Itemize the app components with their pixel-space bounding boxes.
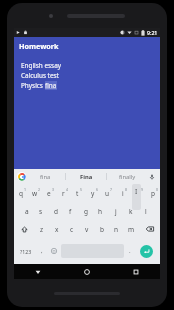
button[interactable]: j <box>108 202 123 220</box>
button[interactable]: l <box>138 202 153 220</box>
button[interactable]: d <box>48 202 63 220</box>
staticText: 7 <box>110 187 113 192</box>
button[interactable]: ?123 <box>16 240 36 262</box>
button[interactable]: . <box>124 240 135 262</box>
button[interactable]: p <box>145 184 160 202</box>
staticText: m <box>128 225 135 234</box>
button[interactable]: fina <box>26 173 65 181</box>
button[interactable]: Shift <box>14 220 34 238</box>
button[interactable]: r <box>56 184 70 202</box>
staticText: w <box>32 189 38 198</box>
staticText: c <box>70 225 74 234</box>
staticText: ?123 <box>20 248 32 255</box>
staticText: z <box>40 225 44 234</box>
button[interactable]: Back <box>14 264 62 279</box>
staticText: g <box>84 207 88 216</box>
button[interactable]: u <box>100 184 115 202</box>
button[interactable]: Emoji <box>47 240 61 262</box>
staticText: u <box>105 189 110 198</box>
staticText: 3 <box>52 187 55 192</box>
staticText: Homework <box>19 41 59 51</box>
button[interactable]: x <box>49 220 64 238</box>
staticText: 1 <box>24 187 27 192</box>
button[interactable]: o <box>130 184 145 202</box>
staticText: Fina <box>80 173 93 181</box>
button[interactable]: Fina <box>66 173 106 181</box>
staticText: , <box>41 247 43 255</box>
staticText: Physics <box>21 81 45 90</box>
staticText: r <box>62 189 65 198</box>
staticText: fina <box>45 81 57 90</box>
staticText: . <box>129 247 131 255</box>
button[interactable]: , <box>36 240 47 262</box>
staticText: 2 <box>38 187 41 192</box>
staticText: n <box>114 225 119 234</box>
button[interactable]: Backspace <box>139 220 160 238</box>
staticText: f <box>69 207 72 216</box>
staticText: y <box>91 189 95 198</box>
button[interactable]: a <box>20 202 34 220</box>
button[interactable]: n <box>109 220 124 238</box>
staticText: x <box>55 225 59 234</box>
staticText: 5 <box>80 187 83 192</box>
staticText: v <box>85 225 89 234</box>
staticText: 4 <box>66 187 69 192</box>
button[interactable]: finally <box>107 173 147 181</box>
button[interactable]: i <box>115 184 130 202</box>
staticText: 9 <box>141 187 144 192</box>
staticText: finally <box>119 173 136 181</box>
staticText: English essay <box>21 61 61 70</box>
button[interactable]: Recents <box>111 264 160 279</box>
staticText: i <box>122 189 124 198</box>
button[interactable]: Voice input <box>147 169 157 184</box>
staticText: h <box>98 207 103 216</box>
staticText: 8 <box>125 187 128 192</box>
button[interactable]: k <box>123 202 138 220</box>
button[interactable]: t <box>70 184 85 202</box>
button[interactable]: Enter <box>140 245 153 258</box>
button[interactable]: m <box>124 220 139 238</box>
staticText: I <box>135 187 138 196</box>
staticText: k <box>129 207 133 216</box>
button[interactable]: q <box>14 184 28 202</box>
staticText: l <box>145 207 147 216</box>
staticText: a <box>25 207 29 216</box>
staticText: d <box>54 207 58 216</box>
button[interactable]: v <box>79 220 94 238</box>
staticText: 0 <box>156 187 159 192</box>
staticText: fina <box>40 173 51 181</box>
button[interactable]: Google <box>17 172 26 181</box>
staticText: t <box>76 189 79 198</box>
button[interactable]: c <box>64 220 79 238</box>
staticText: o <box>136 189 140 198</box>
staticText: j <box>115 207 117 216</box>
button[interactable]: s <box>34 202 48 220</box>
button[interactable]: Home <box>62 264 111 279</box>
button[interactable]: y <box>85 184 100 202</box>
staticText: b <box>100 225 104 234</box>
button[interactable]: b <box>94 220 109 238</box>
staticText: Calculus test <box>21 71 59 80</box>
button[interactable]: English essay <box>14 55 160 169</box>
button[interactable]: g <box>78 202 93 220</box>
staticText: e <box>47 189 51 198</box>
staticText: s <box>39 207 43 216</box>
button[interactable]: Homework <box>14 37 160 55</box>
button[interactable]: w <box>28 184 42 202</box>
button[interactable]: h <box>93 202 108 220</box>
staticText: q <box>19 189 23 198</box>
button[interactable]: z <box>34 220 49 238</box>
button[interactable]: e <box>42 184 56 202</box>
button[interactable]: f <box>63 202 78 220</box>
staticText: p <box>151 189 155 198</box>
staticText: 6 <box>96 187 99 192</box>
staticText: 9:21 <box>147 29 158 36</box>
